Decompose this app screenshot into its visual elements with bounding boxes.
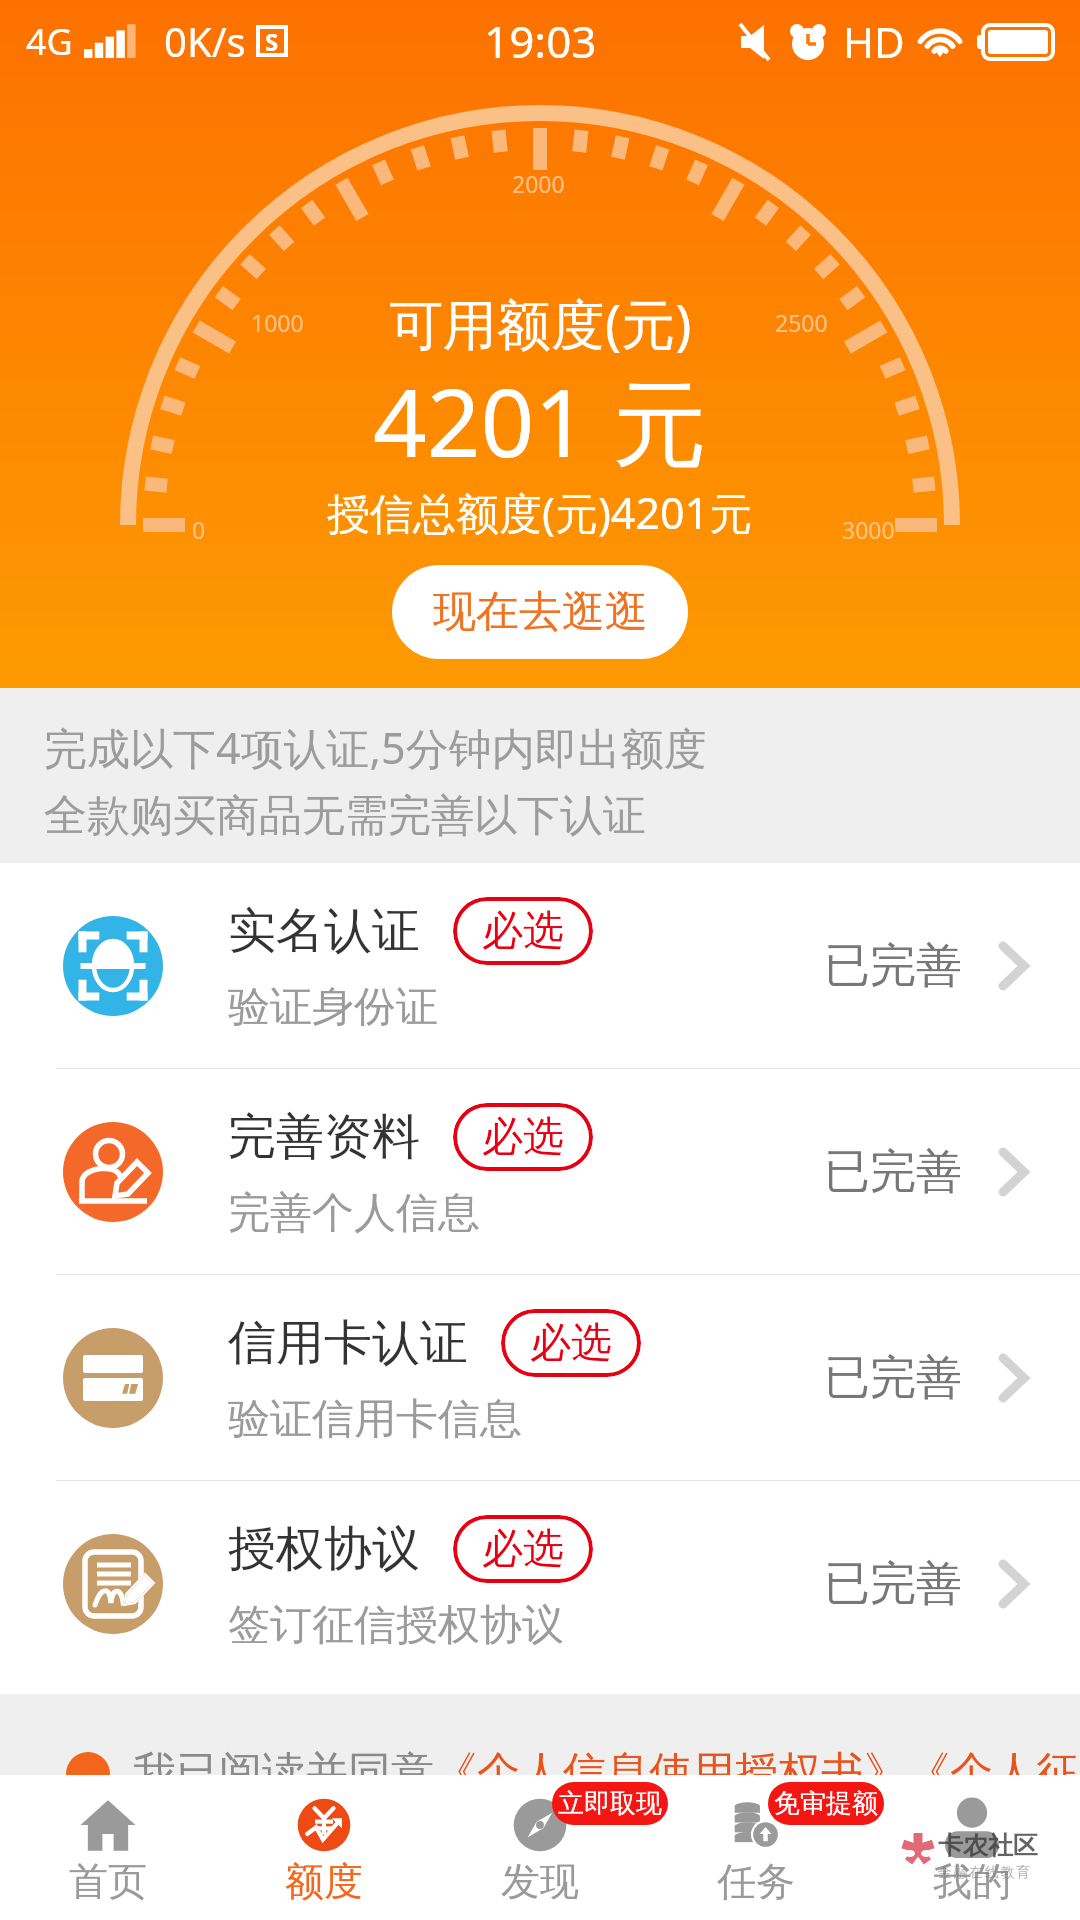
button[interactable]: 首页 (0, 1775, 216, 1920)
staticText: 已完善 (824, 1555, 962, 1613)
staticText: 已完善 (824, 1349, 962, 1407)
staticText: 首页 (69, 1857, 147, 1906)
staticText: 现在去逛逛 (433, 585, 648, 639)
staticText: 信用卡认证 (228, 1313, 468, 1373)
staticText: 额度 (285, 1857, 363, 1906)
staticText: 验证信用卡信息 (228, 1393, 522, 1446)
staticText: 完善资料 (228, 1107, 420, 1167)
staticText: 全款购买商品无需完善以下认证 (44, 789, 646, 843)
staticText: 2000 (512, 168, 565, 199)
staticText: 4201 元 (373, 357, 707, 485)
staticText: 必选 (530, 1317, 612, 1369)
staticText: 0 (192, 514, 206, 545)
staticText: 卡农社区 (938, 1830, 1038, 1861)
staticText: 必选 (482, 1111, 564, 1163)
staticText: 《个人信息使用授权书》《个人征 (434, 1746, 1079, 1800)
staticText: 完成以下4项认证,5分钟内即出额度 (44, 718, 707, 777)
button[interactable]: 发现 (432, 1775, 648, 1920)
staticText: 我已阅读并同意 (133, 1746, 434, 1800)
staticText: 发现 (501, 1857, 579, 1906)
staticText: HD (843, 13, 905, 70)
staticText: 任务 (717, 1857, 795, 1906)
button[interactable]: Agree checkbox (66, 1752, 110, 1796)
staticText: 必选 (482, 1523, 564, 1575)
staticText: 2500 (775, 307, 828, 338)
button[interactable]: 信用卡认证 (0, 1275, 1080, 1480)
staticText: 免审提额 (774, 1787, 878, 1820)
button[interactable]: 额度 (216, 1775, 432, 1920)
staticText: 验证身份证 (228, 981, 438, 1034)
button[interactable]: 我的 (864, 1775, 1080, 1920)
button[interactable]: 授权协议 (0, 1481, 1080, 1686)
staticText: 必选 (482, 905, 564, 957)
staticText: 0K/s (164, 14, 246, 68)
staticText: 授权协议 (228, 1519, 420, 1579)
staticText: 立即取现 (558, 1787, 662, 1820)
staticText: 授信总额度(元)4201元 (327, 483, 753, 542)
staticText: S (265, 25, 279, 57)
staticText: 金融在线教育 (938, 1864, 1032, 1882)
button[interactable]: 现在去逛逛 (392, 565, 688, 659)
staticText: 19:03 (484, 11, 597, 71)
button[interactable]: 实名认证 (0, 863, 1080, 1068)
button[interactable]: 完善资料 (0, 1069, 1080, 1274)
staticText: 我的 (933, 1857, 1011, 1906)
staticText: 已完善 (824, 937, 962, 995)
staticText: 完善个人信息 (228, 1187, 480, 1240)
staticText: 1000 (251, 307, 304, 338)
staticText: 可用额度(元) (389, 286, 692, 360)
staticText: 4G (26, 17, 73, 66)
staticText: 3000 (842, 514, 895, 545)
staticText: 已完善 (824, 1143, 962, 1201)
staticText: 签订征信授权协议 (228, 1599, 564, 1652)
button[interactable]: 任务 (648, 1775, 864, 1920)
staticText: 实名认证 (228, 901, 420, 961)
